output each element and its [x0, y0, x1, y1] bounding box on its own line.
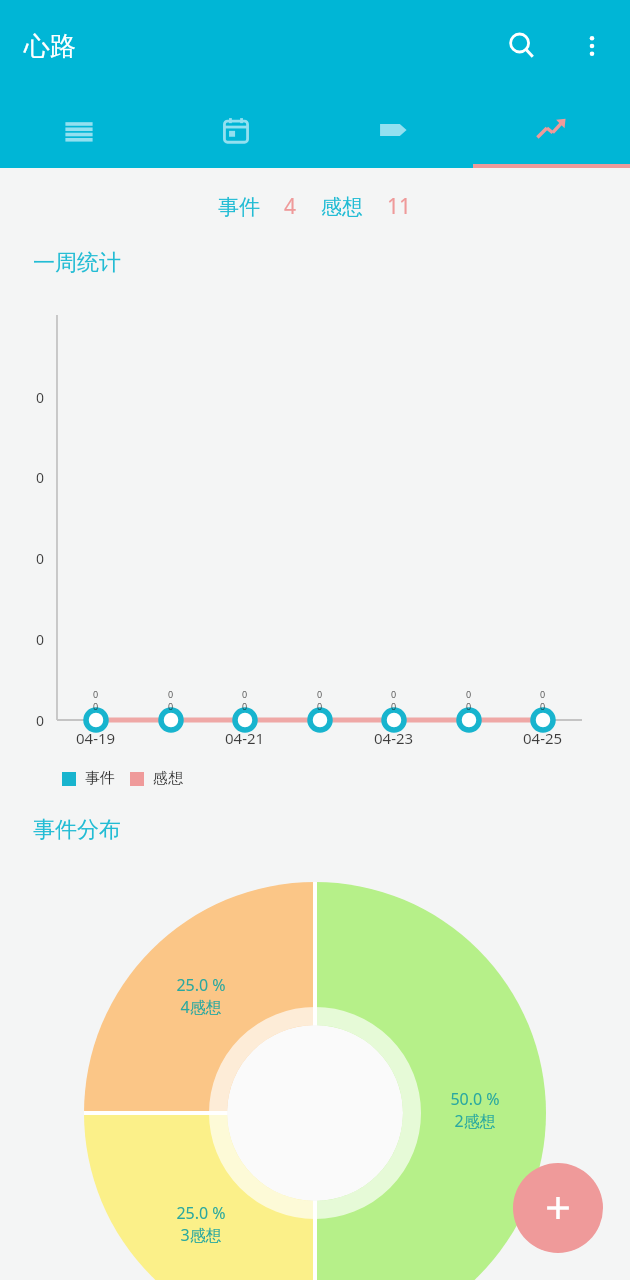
staticText: 0 [466, 688, 472, 700]
staticText: 0 [242, 688, 248, 700]
staticText: 0 [391, 700, 397, 712]
staticText: 0 [317, 688, 323, 700]
staticText: 0 [36, 468, 45, 487]
staticText: 事件 [218, 194, 260, 220]
button[interactable]: Add [513, 1163, 603, 1253]
staticText: 0 [36, 630, 45, 649]
staticText: 11 [387, 192, 412, 221]
button[interactable]: More options [566, 20, 618, 72]
staticText: 0 [391, 688, 397, 700]
staticText: 0 [93, 688, 99, 700]
staticText: 0 [540, 688, 546, 700]
staticText: 04-23 [374, 728, 414, 748]
staticText: 0 [168, 688, 174, 700]
staticText: 0 [540, 700, 546, 712]
staticText: 3感想 [180, 1224, 222, 1246]
staticText: 感想 [321, 194, 363, 220]
staticText: 心路 [24, 30, 76, 63]
staticText: 事件分布 [33, 816, 121, 844]
staticText: 50.0 % [450, 1088, 500, 1110]
button[interactable]: List [0, 92, 157, 168]
staticText: 感想 [153, 769, 183, 788]
staticText: 0 [242, 700, 248, 712]
button[interactable]: Calendar [157, 92, 314, 168]
staticText: 0 [36, 711, 45, 730]
staticText: 25.0 % [176, 1202, 226, 1224]
staticText: 0 [36, 549, 45, 568]
staticText: 04-25 [523, 728, 563, 748]
staticText: 0 [168, 700, 174, 712]
staticText: 04-21 [225, 728, 265, 748]
staticText: 4 [284, 192, 297, 221]
staticText: 0 [466, 700, 472, 712]
staticText: 2感想 [454, 1110, 496, 1132]
staticText: 0 [93, 700, 99, 712]
staticText: 0 [36, 388, 45, 407]
staticText: 4感想 [180, 996, 222, 1018]
staticText: 04-19 [76, 728, 116, 748]
staticText: 0 [317, 700, 323, 712]
button[interactable]: Tags [314, 92, 472, 168]
staticText: 25.0 % [176, 974, 226, 996]
staticText: 一周统计 [33, 249, 121, 277]
staticText: 事件 [85, 769, 115, 788]
button[interactable]: Search [496, 20, 548, 72]
button[interactable]: Statistics [472, 92, 630, 168]
